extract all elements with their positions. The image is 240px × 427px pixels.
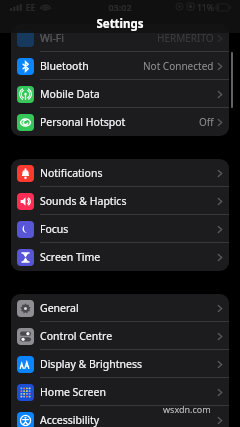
staticText: Accessibility	[40, 413, 100, 427]
staticText: Not Connected	[143, 59, 214, 73]
button[interactable]: Sounds & Haptics	[11, 187, 229, 215]
staticText: Control Centre	[40, 329, 113, 343]
staticText: Sounds & Haptics	[40, 194, 127, 208]
staticText: HERMERITO	[157, 31, 214, 45]
button[interactable]: General	[11, 294, 229, 322]
button[interactable]: Wi-Fi	[11, 24, 229, 52]
staticText: General	[40, 301, 79, 315]
staticText: Wi-Fi	[40, 31, 65, 45]
staticText: wsxdn.com	[163, 403, 211, 415]
staticText: 03:02	[100, 1, 140, 13]
staticText: Home Screen	[40, 385, 106, 399]
staticText: 11%	[197, 2, 214, 14]
staticText: Screen Time	[40, 250, 101, 264]
staticText: Focus	[40, 222, 69, 236]
staticText: Mobile Data	[40, 87, 100, 101]
staticText: Settings	[0, 16, 240, 32]
button[interactable]: Personal Hotspot	[11, 108, 229, 136]
button[interactable]: Bluetooth	[11, 52, 229, 80]
staticText: Notifications	[40, 166, 103, 180]
staticText: Display & Brightness	[40, 357, 143, 371]
button[interactable]: Home Screen	[11, 378, 229, 406]
button[interactable]: Focus	[11, 215, 229, 243]
staticText: EE	[26, 2, 36, 14]
staticText: Bluetooth	[40, 59, 89, 73]
staticText: Off	[199, 115, 214, 129]
button[interactable]: Screen Time	[11, 243, 229, 271]
button[interactable]: Display & Brightness	[11, 350, 229, 378]
button[interactable]: Accessibility	[11, 406, 229, 427]
button[interactable]: Control Centre	[11, 322, 229, 350]
staticText: Personal Hotspot	[40, 115, 126, 129]
button[interactable]: Notifications	[11, 159, 229, 187]
button[interactable]: Mobile Data	[11, 80, 229, 108]
